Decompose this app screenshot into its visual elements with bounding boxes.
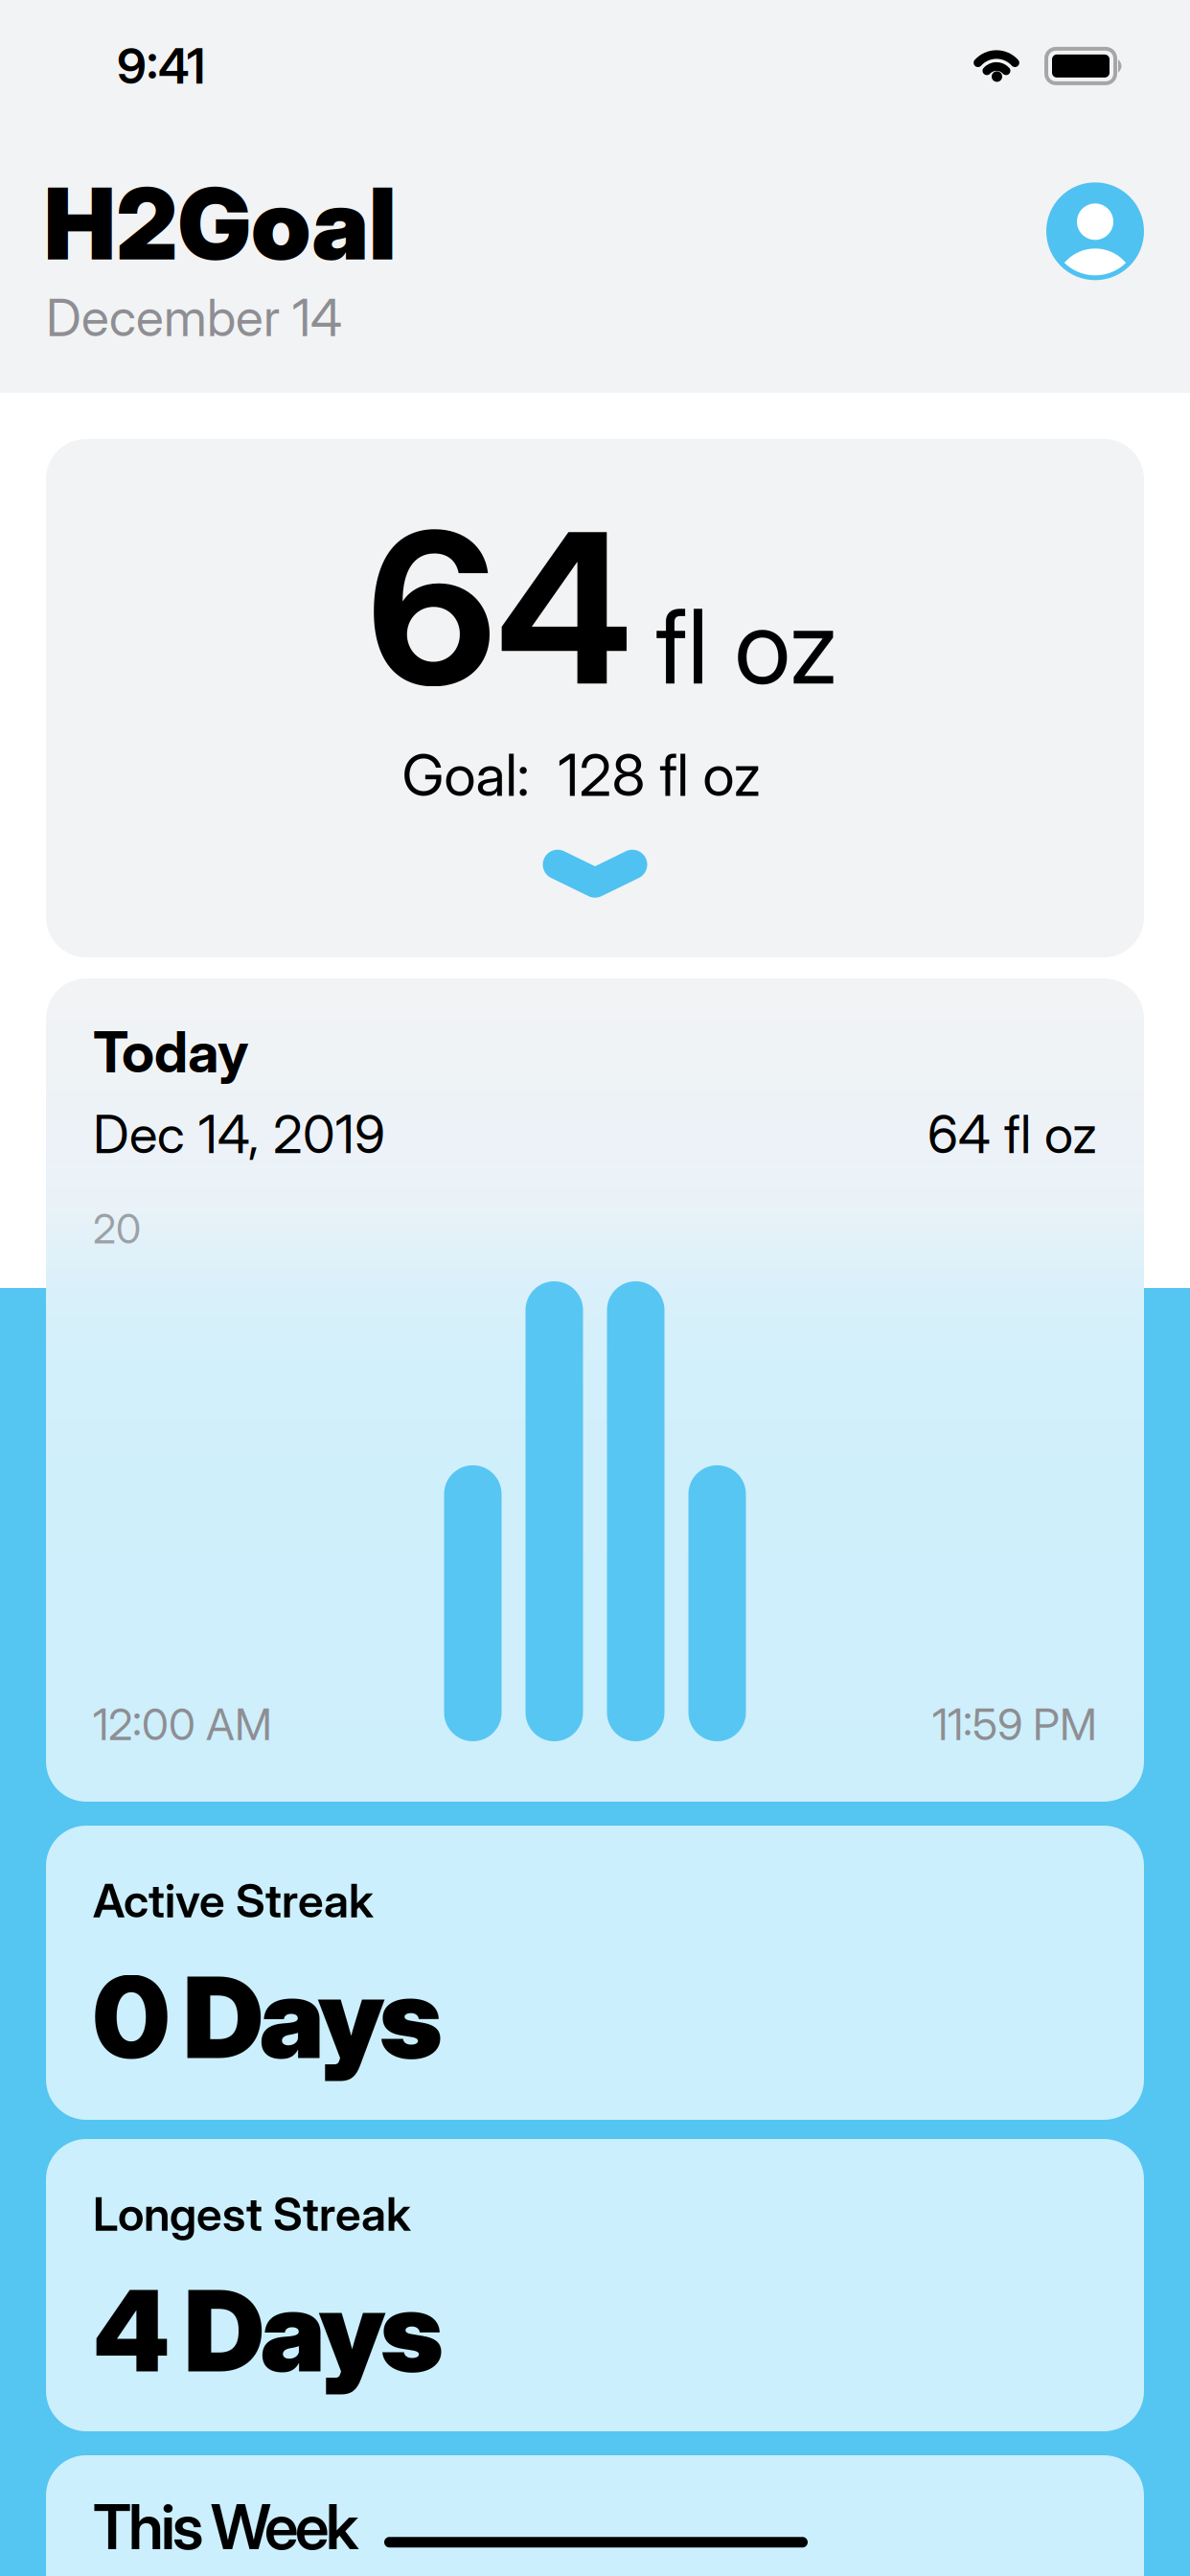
staticText: 0 Days — [93, 1951, 443, 2083]
staticText: 9:41 — [117, 37, 205, 95]
staticText: 64 — [367, 485, 633, 731]
staticText: H2Goal — [44, 166, 397, 282]
staticText: Longest Streak — [93, 2187, 411, 2241]
staticText: December 14 — [46, 287, 342, 348]
staticText: Goal: 128 fl oz — [402, 741, 761, 809]
staticText: 12:00 AM — [93, 1699, 272, 1750]
staticText: 20 — [93, 1204, 141, 1253]
staticText: This Week — [93, 2491, 358, 2563]
staticText: Active Streak — [93, 1874, 374, 1928]
staticText: fl oz — [656, 586, 838, 707]
staticText: Dec 14, 2019 — [93, 1103, 385, 1165]
staticText: 64 fl oz — [927, 1103, 1097, 1165]
staticText: 4 Days — [93, 2264, 444, 2397]
button[interactable]: Expand — [541, 849, 649, 899]
button[interactable]: Profile — [1046, 182, 1144, 280]
staticText: Today — [93, 1019, 248, 1085]
staticText: 11:59 PM — [932, 1699, 1097, 1750]
